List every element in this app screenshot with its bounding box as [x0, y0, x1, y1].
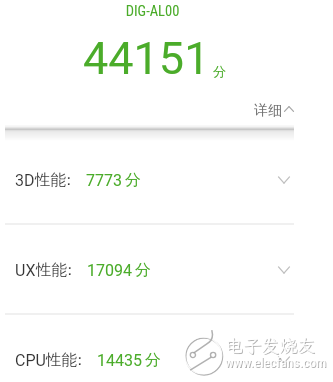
staticText: 3D	[15, 171, 35, 190]
staticText: 7773	[86, 171, 122, 190]
staticText: www.elecfans.com	[226, 355, 328, 371]
staticText: 分	[125, 170, 141, 190]
staticText: 电子发烧友	[225, 333, 315, 357]
staticText: 44151	[83, 32, 210, 85]
staticText: 分	[135, 260, 151, 280]
other: Expand	[272, 258, 296, 282]
staticText: 电子发烧友	[226, 334, 316, 358]
other: Expand	[272, 348, 296, 372]
staticText: ：	[62, 260, 78, 280]
staticText: DIG-AL00	[0, 3, 305, 20]
staticText: CPU	[15, 351, 46, 370]
staticText: ：	[72, 350, 88, 370]
staticText: 性能	[35, 170, 66, 190]
staticText: UX	[15, 261, 36, 280]
button[interactable]: CPU	[0, 315, 333, 382]
button[interactable]: 详细	[254, 102, 296, 120]
button[interactable]: 3D	[0, 135, 333, 225]
staticText: 性能	[36, 260, 67, 280]
other: Expand	[272, 168, 296, 192]
staticText: 分	[213, 63, 226, 79]
staticText: ：	[61, 170, 77, 190]
staticText: 分	[145, 350, 161, 370]
button[interactable]: UX	[0, 225, 333, 315]
staticText: www.elecfans.com	[225, 354, 327, 370]
staticText: 详细	[254, 102, 282, 120]
staticText: 17094	[87, 261, 132, 280]
staticText: 14435	[97, 351, 142, 370]
staticText: 性能	[46, 350, 77, 370]
